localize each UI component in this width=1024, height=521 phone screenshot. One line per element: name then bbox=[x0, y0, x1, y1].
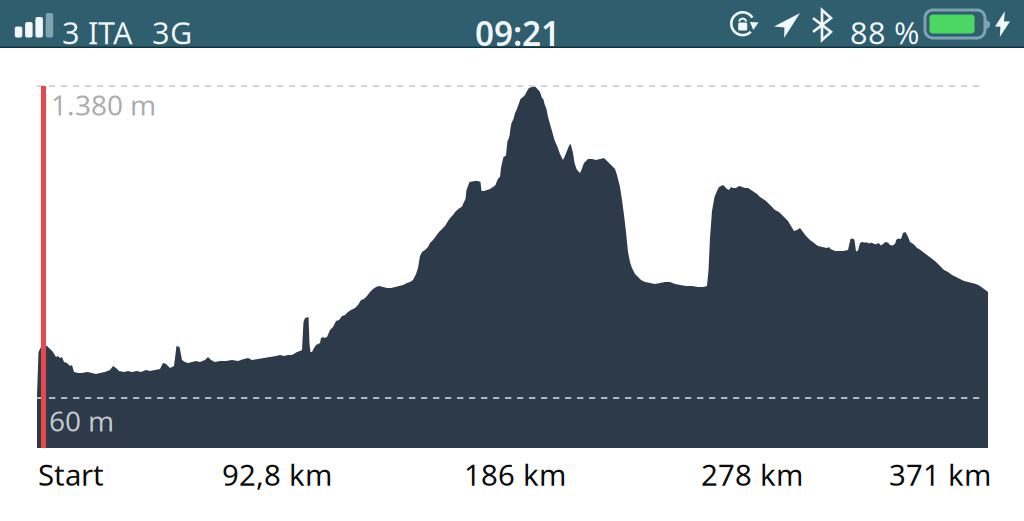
staticText: 278 km bbox=[701, 455, 803, 494]
staticText: 186 km bbox=[464, 455, 566, 494]
button[interactable]: Elevation profile, 1.380 m maximum, 371 … bbox=[0, 48, 1024, 448]
staticText: 371 km bbox=[889, 455, 991, 494]
staticText: 92,8 km bbox=[222, 455, 332, 494]
staticText: 3G bbox=[152, 12, 192, 53]
staticText: Start bbox=[38, 455, 104, 494]
staticText: 1.380 m bbox=[51, 86, 156, 123]
staticText: 3 ITA bbox=[62, 12, 133, 53]
staticText: 09:21 bbox=[475, 11, 560, 55]
staticText: 60 m bbox=[49, 402, 114, 439]
staticText: 88 % bbox=[850, 12, 919, 53]
